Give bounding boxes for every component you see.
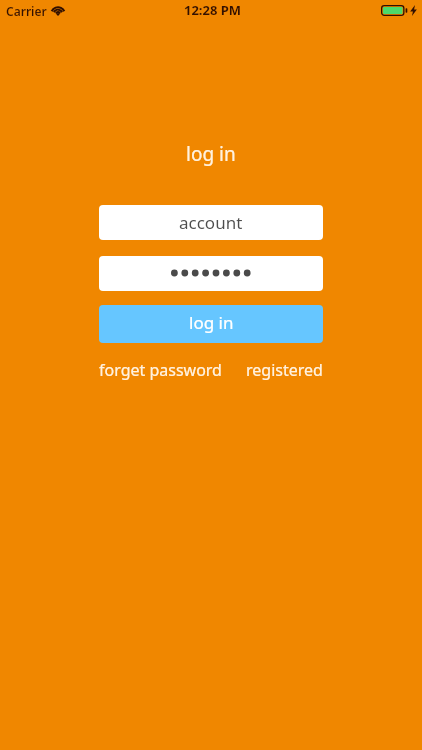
other: Battery charging bbox=[381, 5, 417, 16]
staticText: forget password bbox=[99, 359, 222, 381]
button[interactable]: account bbox=[99, 205, 323, 240]
staticText: registered bbox=[246, 359, 323, 381]
button[interactable]: password bbox=[99, 256, 323, 291]
button[interactable]: forget password bbox=[99, 359, 222, 381]
staticText: Carrier bbox=[6, 3, 47, 19]
staticText: log in bbox=[186, 141, 236, 167]
staticText: account bbox=[179, 211, 243, 234]
other: Wi-Fi signal bbox=[51, 6, 65, 17]
button[interactable]: registered bbox=[246, 359, 323, 381]
button[interactable]: log in bbox=[99, 305, 323, 343]
staticText: log in bbox=[189, 311, 234, 334]
staticText: 12:28 PM bbox=[184, 1, 242, 19]
